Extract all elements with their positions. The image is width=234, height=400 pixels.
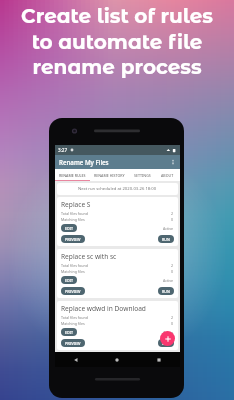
staticText: RUN: [162, 237, 170, 242]
staticText: Matching files: [61, 321, 85, 326]
staticText: Matching files: [61, 269, 85, 274]
button[interactable]: EDIT: [61, 276, 77, 284]
staticText: Create list of rules to automate file re…: [21, 4, 213, 79]
staticText: Total files found: [61, 211, 88, 216]
staticText: Rename My Files: [59, 158, 109, 166]
staticText: PREVIEW: [65, 341, 81, 346]
staticText: RUN: [162, 289, 170, 294]
button[interactable]: Back: [55, 352, 96, 367]
button[interactable]: PREVIEW: [61, 339, 85, 347]
staticText: Replace sc with sc: [61, 252, 117, 261]
button[interactable]: Add rule: [160, 331, 175, 346]
staticText: Active: [163, 226, 174, 231]
button[interactable]: PREVIEW: [61, 235, 85, 243]
button[interactable]: EDIT: [61, 328, 77, 336]
staticText: EDIT: [65, 226, 73, 231]
button[interactable]: Replace sc with sc: [57, 249, 178, 298]
staticText: 0: [171, 217, 174, 222]
button[interactable]: Next run scheduled at 2020-03-26 18:00: [57, 183, 178, 195]
staticText: 2: [171, 315, 174, 320]
staticText: Matching files: [61, 217, 85, 222]
staticText: 0: [171, 321, 174, 326]
button[interactable]: PREVIEW: [61, 287, 85, 295]
staticText: 2: [171, 211, 174, 216]
staticText: PREVIEW: [65, 237, 81, 242]
button[interactable]: Rename My Files: [55, 155, 180, 169]
button[interactable]: RUN: [158, 339, 174, 347]
button[interactable]: RENAME HISTORY: [90, 169, 129, 181]
staticText: 0: [171, 269, 174, 274]
staticText: Total files found: [61, 315, 88, 320]
button[interactable]: ABOUT: [155, 169, 180, 181]
staticText: Next run scheduled at 2020-03-26 18:00: [78, 186, 157, 192]
staticText: Replace wdwd in Download: [61, 304, 146, 313]
button[interactable]: SETTINGS: [129, 169, 155, 181]
staticText: PREVIEW: [65, 289, 81, 294]
button[interactable]: Replace S: [57, 197, 178, 246]
staticText: 3:27: [58, 147, 68, 153]
staticText: RENAME HISTORY: [94, 173, 125, 178]
button[interactable]: Home: [96, 352, 138, 367]
staticText: 2: [171, 263, 174, 268]
staticText: Active: [163, 278, 174, 283]
button[interactable]: More options: [168, 157, 178, 167]
staticText: Total files found: [61, 263, 88, 268]
button[interactable]: Replace wdwd in Download: [57, 301, 178, 350]
staticText: EDIT: [65, 330, 73, 335]
staticText: SETTINGS: [134, 173, 151, 178]
staticText: RENAME RULES: [59, 173, 86, 178]
staticText: RUN: [162, 341, 170, 346]
button[interactable]: RUN: [158, 287, 174, 295]
button[interactable]: RENAME RULES: [55, 169, 90, 181]
staticText: EDIT: [65, 278, 73, 283]
button[interactable]: Recents: [138, 352, 180, 367]
staticText: Replace S: [61, 200, 91, 209]
staticText: ABOUT: [161, 173, 174, 178]
staticText: Active: [163, 330, 174, 335]
button[interactable]: RUN: [158, 235, 174, 243]
button[interactable]: EDIT: [61, 224, 77, 232]
